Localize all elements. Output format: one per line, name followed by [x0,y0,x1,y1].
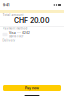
staticText: Visa ···· 4242 [9,31,30,35]
button[interactable]: Pay now [3,85,61,91]
staticText: Pay now [25,86,39,90]
staticText: Total amount [2,13,23,17]
staticText: Payment method [2,27,27,30]
staticText: 9:41 [3,3,9,7]
staticText: Delivery [2,39,15,42]
staticText: Expires 09/27 [9,35,23,38]
button[interactable]: Visa ···· 4242 [0,30,64,38]
staticText: CHF 20.00 [14,16,50,25]
